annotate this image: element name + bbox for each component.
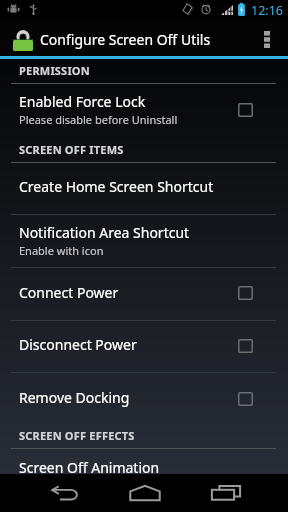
button[interactable]: Remove Docking xyxy=(0,373,288,426)
button[interactable]: Connect Power xyxy=(0,268,288,320)
staticText: 12:16 xyxy=(251,2,283,19)
button[interactable]: Notification Area Shortcut xyxy=(0,215,288,267)
staticText: Enable with icon xyxy=(19,243,104,258)
button[interactable]: Recent apps xyxy=(202,474,250,512)
button[interactable]: Screen Off Animation xyxy=(0,449,288,474)
button[interactable]: Enabled Force Lock xyxy=(0,84,288,137)
staticText: Create Home Screen Shortcut xyxy=(19,177,214,196)
staticText: Disconnect Power xyxy=(19,335,137,354)
button[interactable]: Disconnect Power xyxy=(0,321,288,372)
staticText: SCREEN OFF EFFECTS xyxy=(19,428,135,443)
staticText: SCREEN OFF ITEMS xyxy=(19,142,124,157)
staticText: Remove Docking xyxy=(19,388,130,407)
staticText: PERMISSION xyxy=(19,63,90,78)
button[interactable]: More options xyxy=(246,20,288,59)
staticText: Screen Off Animation xyxy=(19,458,160,474)
staticText: Connect Power xyxy=(19,283,119,302)
button[interactable]: Home xyxy=(121,474,169,512)
staticText: Configure Screen Off Utils xyxy=(40,30,211,49)
staticText: Enabled Force Lock xyxy=(19,92,146,111)
button[interactable]: Create Home Screen Shortcut xyxy=(0,163,288,214)
staticText: Notification Area Shortcut xyxy=(19,223,190,242)
button[interactable]: Back xyxy=(41,474,89,512)
staticText: Please disable before Uninstall xyxy=(19,112,178,127)
